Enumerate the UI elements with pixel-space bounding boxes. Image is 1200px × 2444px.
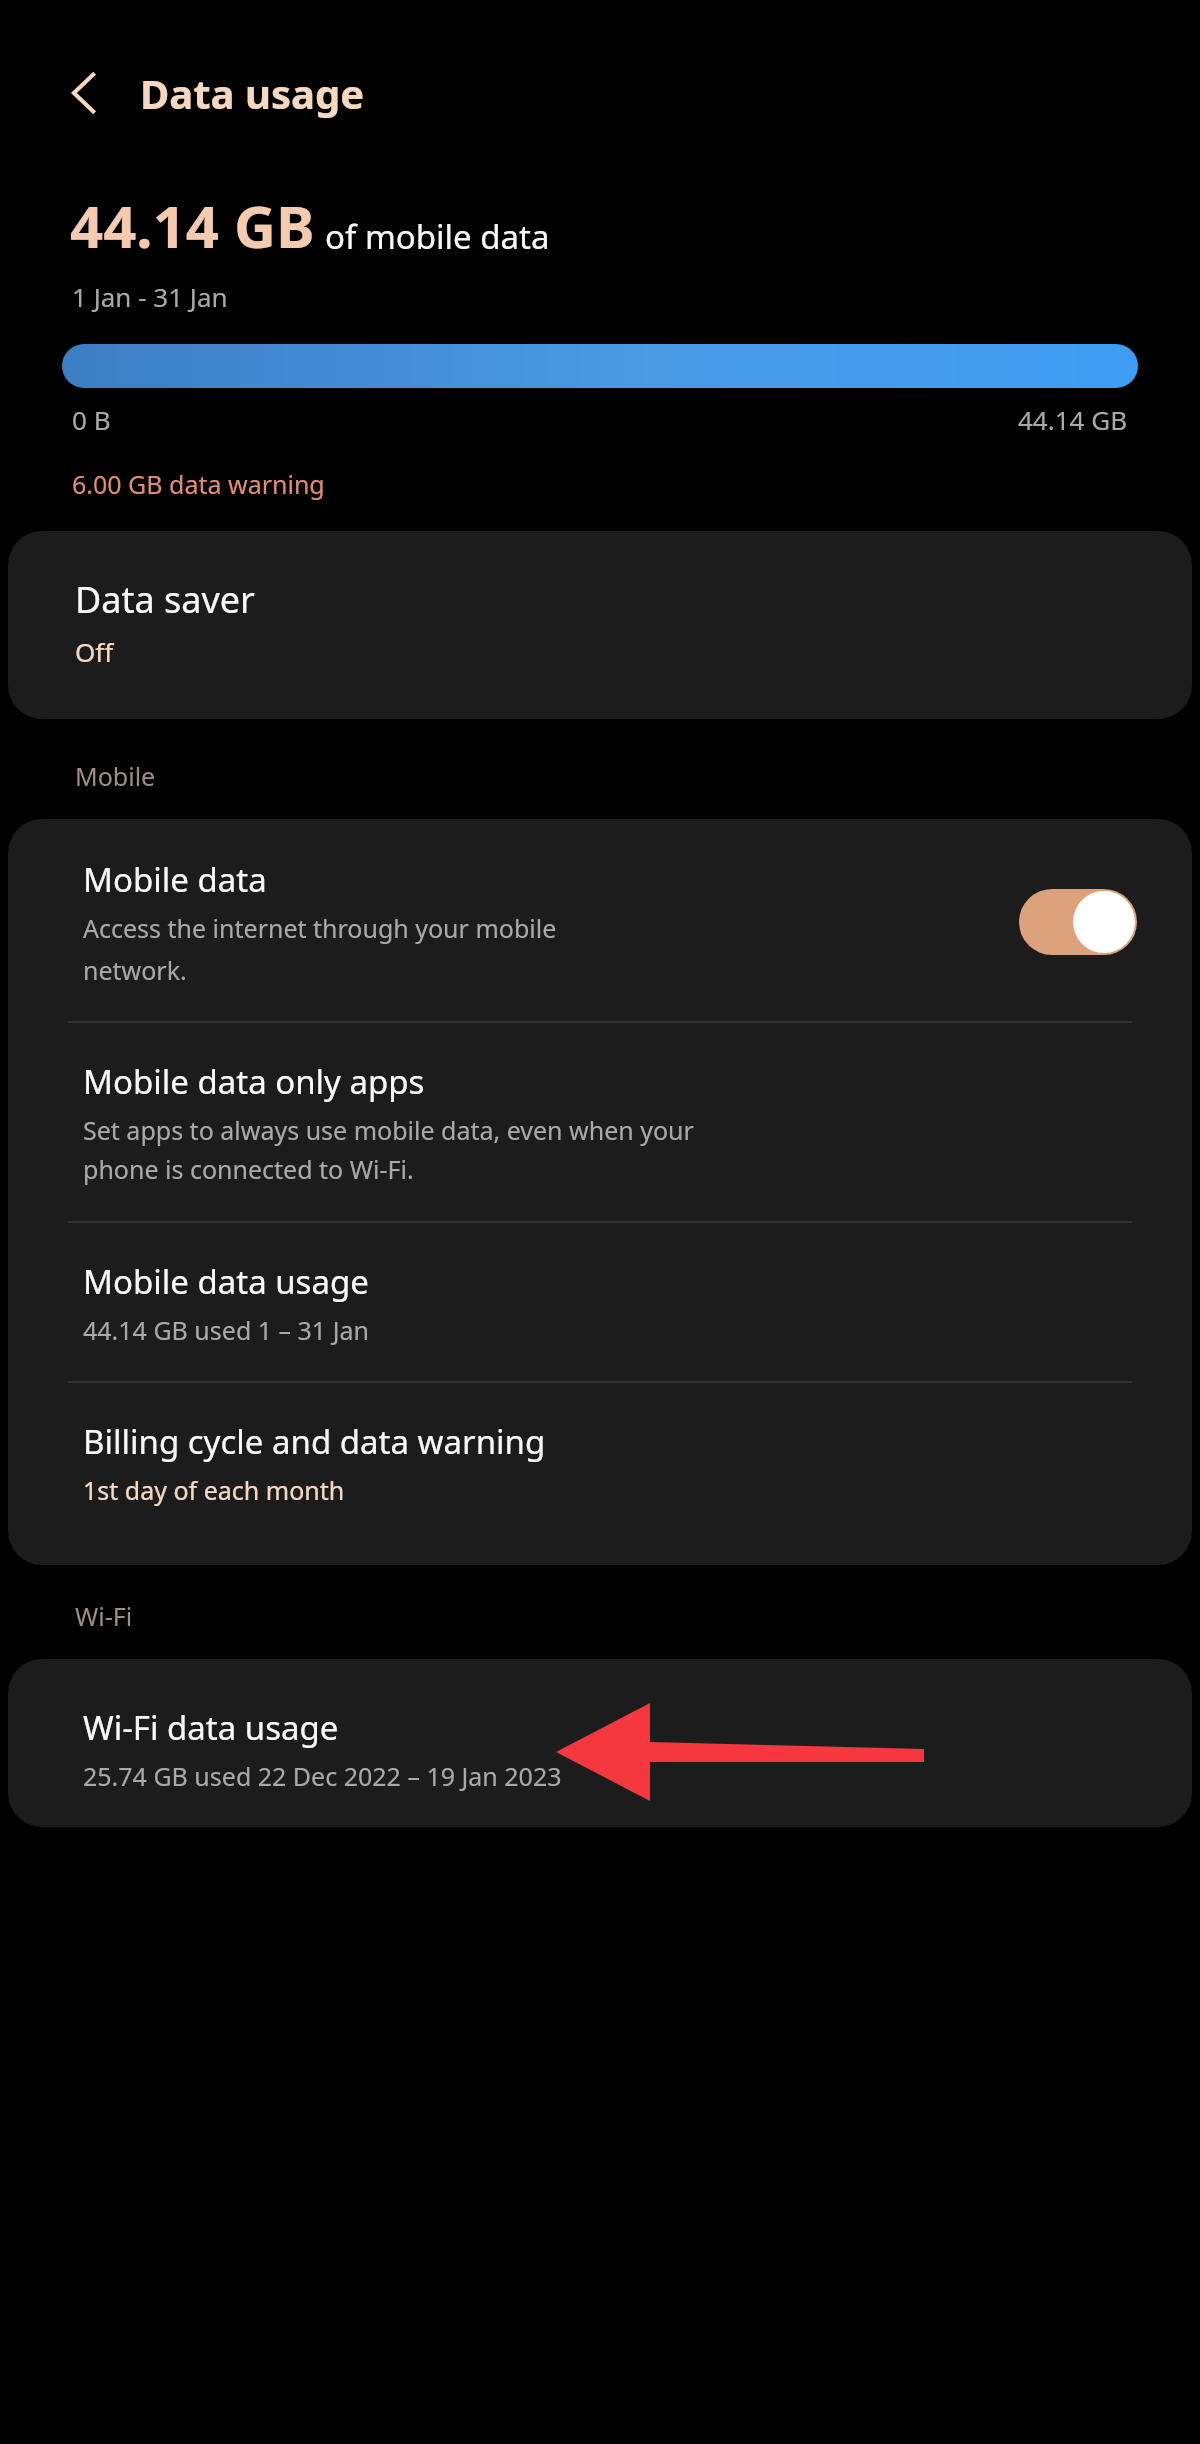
staticText: Mobile data	[83, 857, 267, 902]
button[interactable]: Back	[52, 61, 116, 125]
button[interactable]: Data saver	[8, 531, 1192, 719]
button[interactable]: Mobile data	[8, 819, 1192, 1021]
staticText: 25.74 GB used 22 Dec 2022 – 19 Jan 2023	[83, 1759, 562, 1793]
staticText: of mobile data	[325, 214, 550, 259]
button[interactable]: Mobile data usage	[8, 1223, 1192, 1381]
staticText: 44.14 GB used 1 – 31 Jan	[83, 1313, 369, 1347]
staticText: Billing cycle and data warning	[83, 1419, 546, 1464]
staticText: 1 Jan - 31 Jan	[72, 279, 228, 314]
staticText: Set apps to always use mobile data, even…	[83, 1113, 694, 1187]
staticText: Data saver	[75, 575, 255, 624]
staticText: Mobile data usage	[83, 1259, 369, 1304]
staticText: Mobile	[75, 759, 156, 793]
staticText: 6.00 GB data warning	[72, 467, 325, 501]
staticText: Off	[75, 634, 114, 669]
staticText: 1st day of each month	[83, 1473, 345, 1507]
button[interactable]: Wi-Fi data usage	[8, 1659, 1192, 1827]
staticText: 44.14 GB	[70, 186, 315, 265]
button[interactable]: Billing cycle and data warning	[8, 1383, 1192, 1565]
staticText: Wi-Fi data usage	[83, 1705, 339, 1750]
staticText: Access the internet through your mobile …	[83, 911, 557, 987]
staticText: Data usage	[140, 66, 365, 120]
staticText: Wi-Fi	[75, 1599, 133, 1633]
staticText: 44.14 GB	[1018, 402, 1128, 437]
staticText: Mobile data only apps	[83, 1059, 425, 1104]
staticText: 0 B	[72, 402, 111, 437]
button[interactable]: Mobile data on	[1019, 889, 1137, 955]
button[interactable]: Mobile data only apps	[8, 1023, 1192, 1221]
